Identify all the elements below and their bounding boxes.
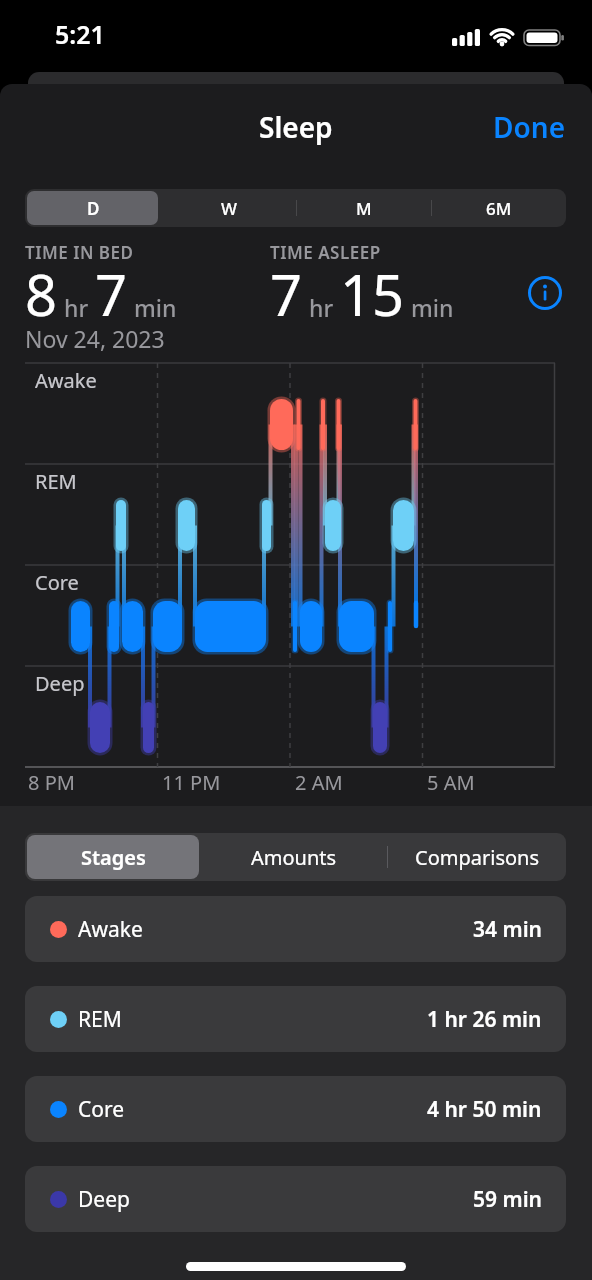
staticText: TIME IN BED <box>25 241 134 264</box>
staticText: Core <box>35 569 79 596</box>
staticText: 1 hr 26 min <box>427 1005 542 1034</box>
staticText: min <box>128 292 177 323</box>
staticText: W <box>221 197 237 220</box>
staticText: 5 AM <box>427 769 475 796</box>
staticText: 5:21 <box>55 17 105 51</box>
button[interactable]: Core <box>25 1076 566 1142</box>
button[interactable]: W <box>161 189 296 227</box>
staticText: Sleep <box>259 108 333 146</box>
staticText: TIME ASLEEP <box>270 241 381 264</box>
button[interactable]: Amounts <box>201 833 387 881</box>
staticText: Awake <box>78 915 143 944</box>
staticText: 15 <box>340 256 405 332</box>
staticText: REM <box>35 468 77 495</box>
staticText: M <box>356 197 372 220</box>
staticText: 6M <box>486 197 512 220</box>
staticText: Deep <box>78 1185 130 1214</box>
staticText: 7 <box>95 256 128 332</box>
staticText: Amounts <box>251 844 337 871</box>
staticText: min <box>405 292 454 323</box>
button[interactable]: REM <box>25 986 566 1052</box>
button[interactable]: M <box>296 189 431 227</box>
staticText: 34 min <box>473 915 542 944</box>
staticText: 7 <box>270 256 303 332</box>
button[interactable]: Awake <box>25 896 566 962</box>
staticText: Awake <box>35 367 97 394</box>
staticText: REM <box>78 1005 122 1034</box>
button[interactable]: D <box>25 189 161 227</box>
staticText: Deep <box>35 670 85 697</box>
staticText: Nov 24, 2023 <box>25 323 165 354</box>
staticText: 2 AM <box>295 769 343 796</box>
button[interactable]: Done <box>493 108 566 146</box>
staticText: 4 hr 50 min <box>427 1095 542 1124</box>
staticText: 8 PM <box>28 769 75 796</box>
staticText: hr <box>303 292 340 323</box>
staticText: Done <box>493 108 566 146</box>
staticText: Core <box>78 1095 125 1124</box>
staticText: Comparisons <box>415 844 539 871</box>
button[interactable]: Comparisons <box>387 833 566 881</box>
staticText: Stages <box>81 844 146 871</box>
staticText: D <box>87 197 100 220</box>
staticText: 11 PM <box>162 769 221 796</box>
staticText: hr <box>58 292 95 323</box>
button[interactable]: 6M <box>431 189 566 227</box>
staticText: 8 <box>25 256 58 332</box>
button[interactable] <box>528 276 562 310</box>
button[interactable]: Deep <box>25 1166 566 1232</box>
button[interactable]: Stages <box>25 833 201 881</box>
staticText: 59 min <box>473 1185 542 1214</box>
